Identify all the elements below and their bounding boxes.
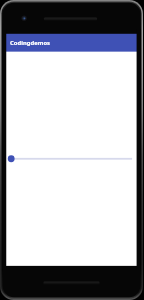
button[interactable]: Codingdemos	[6, 33, 137, 52]
button[interactable]: Slider	[7, 152, 136, 166]
staticText: Codingdemos	[10, 39, 51, 47]
